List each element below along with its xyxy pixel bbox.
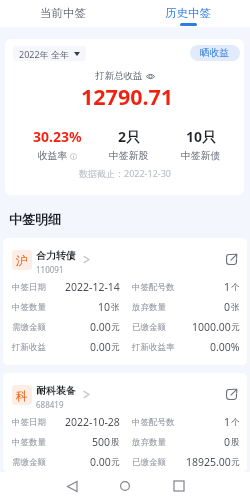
staticText: 10只 (186, 127, 217, 146)
staticText: 中签数量 (12, 437, 46, 448)
staticText: 耐科装备 (36, 384, 76, 397)
staticText: 30.23% (33, 127, 82, 146)
staticText: 18925.00 (186, 455, 231, 469)
staticText: 合力转债 (36, 249, 76, 262)
staticText: 打新总收益 (95, 70, 143, 82)
button[interactable]: Open in new window (225, 388, 238, 401)
staticText: 当前中签 (40, 6, 86, 20)
staticText: 中签配号数 (132, 282, 175, 293)
staticText: 需缴金额 (12, 322, 46, 333)
button[interactable]: 历史中签 (125, 0, 250, 27)
button[interactable]: 10只 (165, 127, 237, 162)
staticText: 中签新股 (109, 150, 149, 162)
staticText: 2022年 全年 (19, 48, 69, 60)
staticText: 需缴金额 (12, 457, 46, 468)
staticText: 688419 (36, 399, 64, 410)
staticText: 放弃数量 (132, 437, 166, 448)
staticText: 放弃数量 (132, 302, 166, 313)
staticText: 中签新债 (181, 150, 221, 162)
staticText: 0.00% (210, 340, 240, 354)
button[interactable]: 沪 (3, 238, 247, 365)
staticText: 1 (224, 280, 231, 294)
staticText: 元 (231, 457, 240, 468)
button[interactable]: Home (113, 474, 137, 498)
staticText: 110091 (36, 264, 64, 275)
staticText: 科 (16, 388, 28, 403)
staticText: 中签数量 (12, 302, 46, 313)
staticText: 2只 (118, 127, 141, 146)
staticText: 0.00 (90, 340, 111, 354)
staticText: 0.00 (90, 320, 111, 334)
staticText: 已缴金额 (132, 457, 166, 468)
staticText: 收益率 (38, 150, 68, 162)
staticText: 中签配号数 (132, 417, 175, 428)
staticText: 股 (111, 437, 120, 448)
button[interactable]: 30.23% (22, 127, 93, 162)
staticText: 打新收益 (12, 342, 46, 353)
staticText: 晒收益 (200, 47, 230, 59)
staticText: 数据截止：2022-12-30 (79, 167, 171, 179)
staticText: 股 (231, 437, 240, 448)
staticText: 0 (224, 300, 231, 314)
staticText: 张 (111, 302, 120, 313)
button[interactable]: Recents (167, 474, 191, 498)
staticText: 12790.71 (81, 82, 174, 111)
button[interactable]: 2只 (93, 127, 165, 162)
button[interactable]: 科 (3, 373, 247, 472)
staticText: 张 (231, 302, 240, 313)
staticText: 已缴金额 (132, 322, 166, 333)
button[interactable]: Toggle amount visibility (146, 73, 155, 80)
staticText: 中签日期 (12, 417, 46, 428)
staticText: 1 (224, 415, 231, 429)
button[interactable]: Back (60, 474, 84, 498)
staticText: 0 (224, 435, 231, 449)
staticText: 中签明细 (9, 211, 61, 227)
button[interactable]: 当前中签 (0, 0, 125, 27)
button[interactable]: Open in new window (225, 253, 238, 266)
staticText: 10 (98, 300, 111, 314)
staticText: 个 (231, 417, 240, 428)
staticText: 中签日期 (12, 282, 46, 293)
staticText: 元 (111, 342, 120, 353)
staticText: 2022-12-14 (65, 280, 120, 294)
staticText: 1000.00 (192, 320, 231, 334)
staticText: 500 (92, 435, 111, 449)
staticText: 元 (111, 457, 120, 468)
staticText: 历史中签 (165, 6, 211, 20)
staticText: 元 (111, 322, 120, 333)
staticText: 2022-10-28 (65, 415, 120, 429)
staticText: 打新收益率 (132, 342, 175, 353)
staticText: 沪 (16, 253, 28, 268)
staticText: 0.00 (90, 455, 111, 469)
staticText: 个 (231, 282, 240, 293)
staticText: 元 (231, 322, 240, 333)
button[interactable]: 2022年 全年 (13, 46, 86, 61)
button[interactable]: 晒收益 (190, 45, 240, 61)
